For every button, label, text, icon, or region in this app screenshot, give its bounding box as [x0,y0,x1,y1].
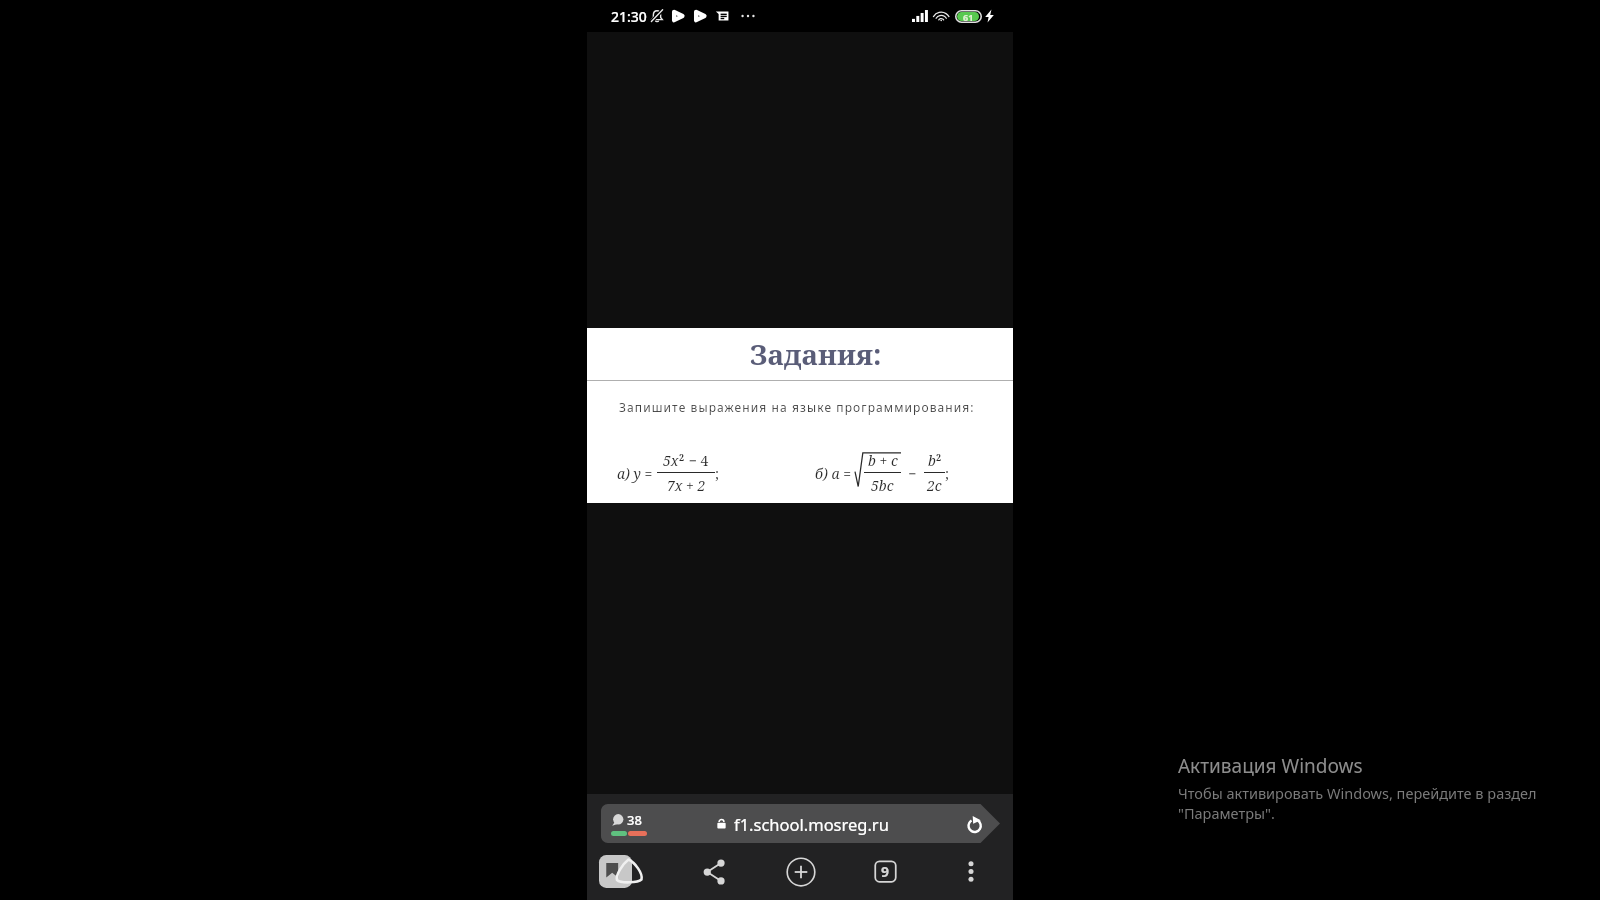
button[interactable]: 38 [601,804,1000,843]
staticText: ; [945,464,950,483]
staticText: b [928,451,936,470]
staticText: − [901,464,924,483]
button[interactable]: Home [587,843,673,900]
staticText: "Параметры". [1178,803,1275,823]
staticText: f1.school.mosreg.ru [734,813,889,835]
button[interactable]: Reload page [958,804,992,843]
button[interactable]: Share [673,843,758,900]
staticText: 5x [663,451,679,470]
staticText: a) y = [617,464,657,483]
staticText: 61 [963,11,974,23]
staticText: 38 [627,811,642,829]
staticText: Активация Windows [1178,753,1363,779]
button[interactable]: More options [928,843,1013,900]
staticText: 2 [936,451,942,463]
staticText: Задания: [750,335,882,373]
staticText: 7x + 2 [667,476,706,495]
button[interactable]: New tab [758,843,843,900]
staticText: 5bc [871,476,894,495]
staticText: 2 [679,451,685,463]
button[interactable]: 38 comments [605,804,655,843]
staticText: Чтобы активировать Windows, перейдите в … [1178,783,1537,803]
staticText: − 4 [685,451,709,470]
staticText: 9 [881,862,890,881]
staticText: ; [715,464,720,483]
staticText: 2c [927,476,942,495]
staticText: б) a = [815,464,855,483]
staticText: b + c [868,451,898,470]
staticText: 21:30 [611,7,647,26]
button[interactable]: Tabs: 9 [843,843,928,900]
staticText: Запишите выражения на языке программиров… [619,399,975,415]
